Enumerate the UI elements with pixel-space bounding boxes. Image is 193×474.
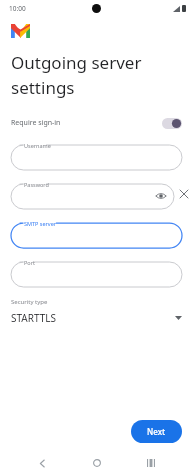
staticText: Next [147, 426, 166, 437]
button[interactable]: Recent apps [138, 452, 164, 474]
button[interactable]: Security type [0, 298, 193, 325]
staticText: 10:00 [9, 4, 26, 13]
staticText: Password [24, 181, 49, 188]
staticText: SMTP server [24, 220, 56, 227]
staticText: Port [24, 259, 35, 266]
button[interactable]: Port [11, 257, 182, 287]
staticText: Security type [11, 298, 48, 306]
button[interactable]: Next [131, 420, 182, 443]
other: Gmail [11, 24, 30, 38]
staticText: STARTTLS [11, 311, 57, 325]
button[interactable]: Clear [174, 179, 193, 209]
button[interactable]: SMTP server [11, 218, 182, 248]
staticText: settings [11, 76, 75, 99]
staticText: Require sign-in [11, 118, 61, 128]
button[interactable]: Require sign-in toggle [162, 118, 182, 129]
button[interactable]: Username [11, 140, 182, 170]
staticText: Outgoing server [11, 51, 142, 74]
button[interactable]: Require sign-in [0, 113, 193, 133]
button[interactable]: Show password [155, 190, 167, 202]
button[interactable]: Password [11, 179, 174, 209]
staticText: Username [24, 142, 51, 149]
button[interactable]: Back [29, 452, 55, 474]
button[interactable]: Home [84, 452, 110, 474]
